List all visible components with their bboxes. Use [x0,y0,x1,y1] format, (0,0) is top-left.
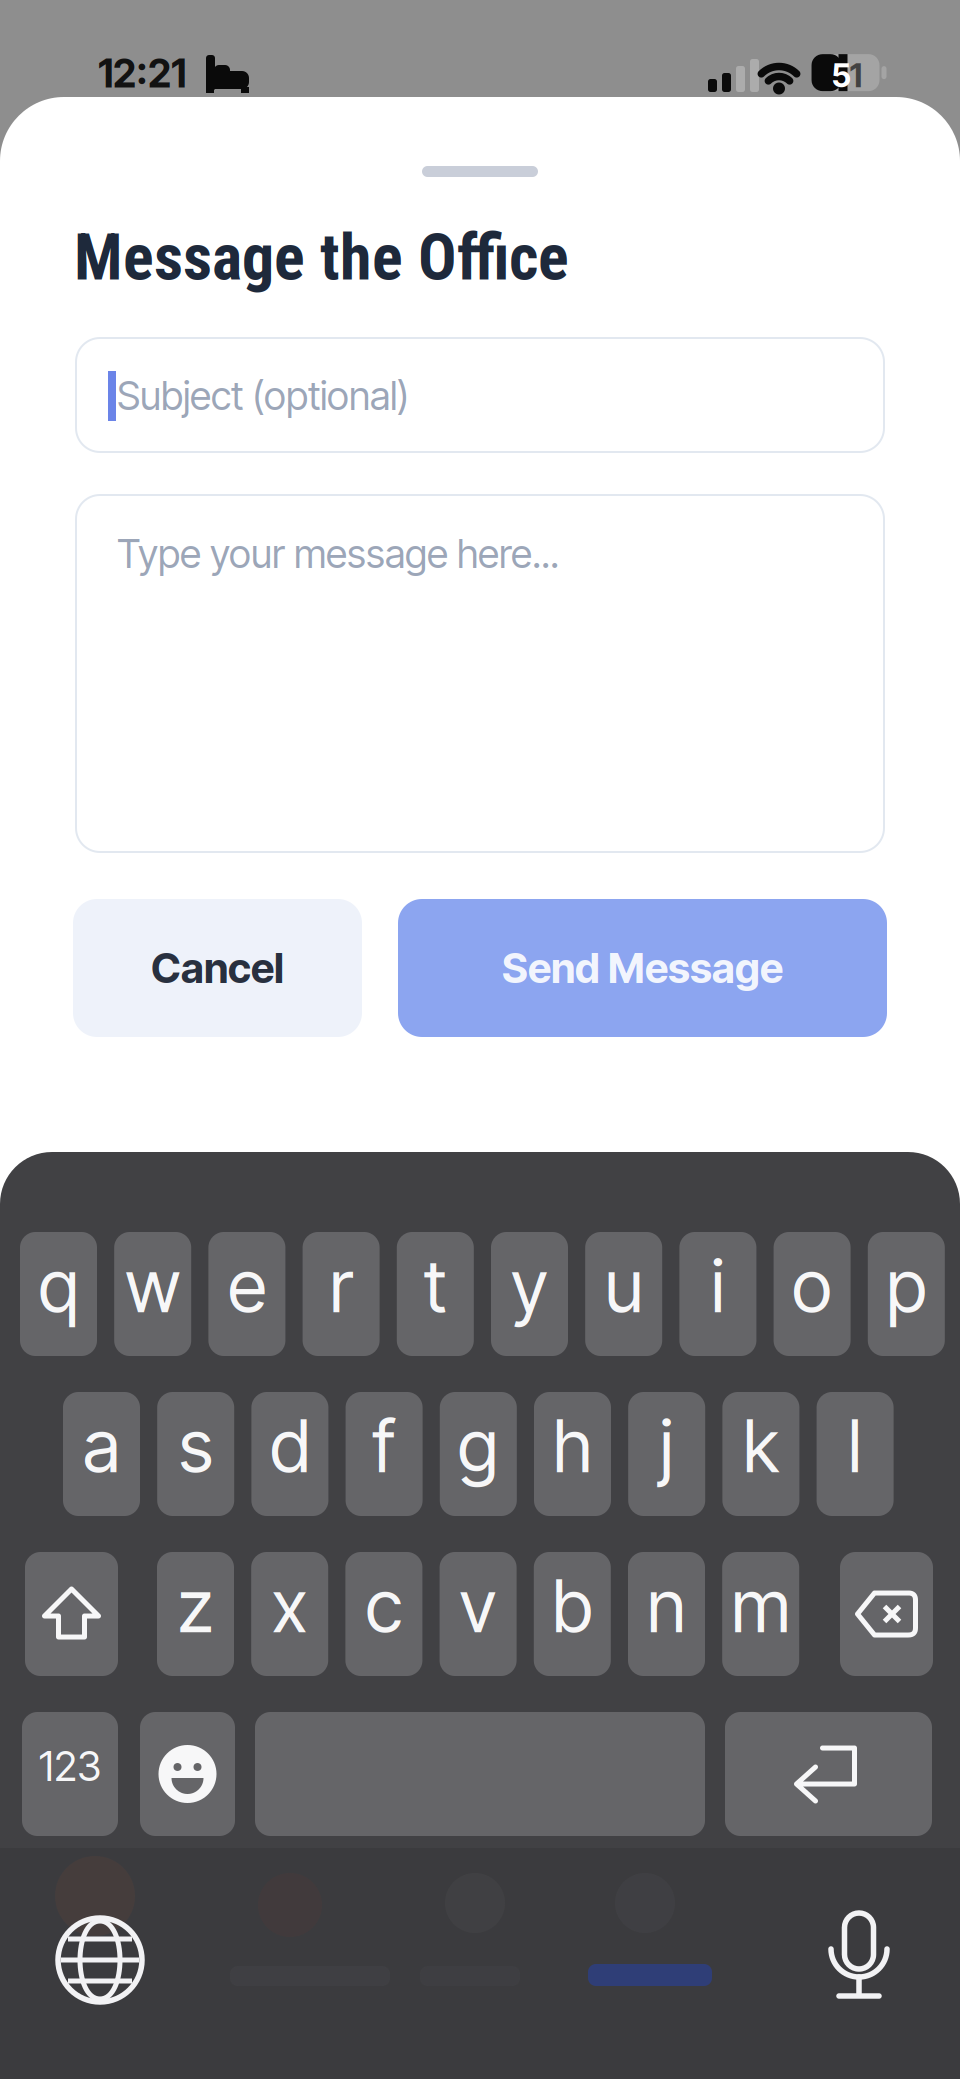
staticText: l [848,1402,862,1489]
staticText: t [424,1242,447,1329]
button[interactable]: Delete [840,1552,933,1676]
staticText: g [458,1402,499,1489]
staticText: u [605,1242,643,1329]
staticText: j [660,1402,674,1489]
button[interactable]: Dictation [831,1913,887,1999]
button[interactable]: a [63,1392,140,1516]
staticText: 123 [39,1741,101,1791]
button[interactable]: Cancel [73,899,362,1037]
button[interactable]: q [20,1232,97,1356]
staticText: Type your message here... [117,530,559,578]
button[interactable]: Send Message [398,899,887,1037]
staticText: n [647,1562,686,1649]
staticText: 12:21 [98,50,186,97]
button[interactable]: i [679,1232,756,1356]
button[interactable]: r [303,1232,380,1356]
button[interactable]: o [774,1232,851,1356]
button[interactable]: s [157,1392,234,1516]
button[interactable]: t [397,1232,474,1356]
button[interactable]: z [157,1552,234,1676]
staticText: i [711,1242,725,1329]
button[interactable]: Subject (optional) [75,337,885,453]
button[interactable]: f [346,1392,423,1516]
staticText: a [83,1402,120,1489]
staticText: 1 [849,56,862,95]
button[interactable]: y [491,1232,568,1356]
staticText: k [743,1402,779,1489]
button[interactable]: w [114,1232,191,1356]
button[interactable]: n [628,1552,705,1676]
staticText: Message the Office [74,220,569,295]
staticText: h [553,1402,592,1489]
staticText: 5 [831,56,851,95]
staticText: e [228,1242,266,1329]
staticText: y [511,1242,548,1329]
button[interactable]: b [534,1552,611,1676]
staticText: s [179,1402,213,1489]
button[interactable]: d [251,1392,328,1516]
staticText: d [270,1402,310,1489]
staticText: q [38,1242,78,1329]
staticText: m [731,1562,790,1649]
button[interactable]: p [868,1232,945,1356]
staticText: w [125,1242,180,1329]
button[interactable]: Type your message here... [75,494,885,853]
button[interactable]: Return [725,1712,932,1836]
staticText: c [365,1562,402,1649]
button[interactable]: Shift [25,1552,118,1676]
button[interactable]: x [251,1552,328,1676]
button[interactable]: k [722,1392,799,1516]
staticText: p [886,1242,926,1329]
button[interactable]: Emoji [140,1712,235,1836]
button[interactable]: m [722,1552,799,1676]
staticText: Send Message [502,943,783,993]
button[interactable]: 123 [22,1712,118,1836]
staticText: x [272,1562,308,1649]
button[interactable]: c [345,1552,422,1676]
button[interactable]: l [817,1392,894,1516]
button[interactable]: Next keyboard [58,1918,142,2002]
staticText: z [177,1562,213,1649]
button[interactable]: u [585,1232,662,1356]
button[interactable]: g [440,1392,517,1516]
staticText: o [792,1242,832,1329]
staticText: b [552,1562,592,1649]
staticText: Subject (optional) [117,372,409,420]
staticText: r [330,1242,353,1329]
staticText: f [373,1402,396,1489]
staticText: Cancel [151,943,284,993]
staticText: v [460,1562,497,1649]
button[interactable]: v [440,1552,517,1676]
button[interactable]: h [534,1392,611,1516]
button[interactable]: e [208,1232,285,1356]
button[interactable]: j [628,1392,705,1516]
